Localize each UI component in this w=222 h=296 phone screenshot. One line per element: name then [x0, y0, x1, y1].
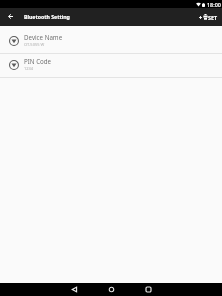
button[interactable]: Recent apps [133, 283, 163, 295]
staticText: SET [208, 14, 218, 21]
button[interactable]: Home [96, 283, 126, 295]
staticText: PIN Code [24, 57, 52, 65]
staticText: Device Name [24, 33, 63, 41]
button[interactable]: Back [0, 8, 20, 26]
button[interactable]: Device Name [0, 29, 222, 53]
button[interactable]: PIN Code [0, 54, 222, 77]
button[interactable]: Reset [193, 8, 222, 26]
staticText: Bluetooth Setting [24, 13, 70, 20]
staticText: 18:00 [207, 1, 221, 8]
button[interactable]: Back [59, 283, 89, 295]
staticText: 1234 [24, 66, 34, 71]
staticText: OT-5055 W [24, 42, 45, 47]
